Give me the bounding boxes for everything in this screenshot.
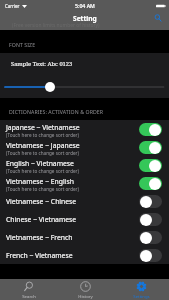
button[interactable]: French ~ Vietnamese: [0, 246, 169, 264]
staticText: Vietnamese ~ Japanese: [6, 141, 80, 150]
button[interactable]: On: [139, 123, 162, 136]
button[interactable]: On: [139, 177, 162, 190]
button[interactable]: On: [139, 159, 162, 172]
staticText: (Touch here to change sort order): [6, 132, 79, 138]
button[interactable]: Off: [139, 213, 162, 226]
button[interactable]: Vietnamese ~ Chinese: [0, 192, 169, 210]
staticText: (Touch here to change sort order): [6, 186, 79, 192]
button[interactable]: History: [57, 279, 113, 300]
button[interactable]: Search: [152, 12, 164, 24]
button[interactable]: On: [139, 141, 162, 154]
button[interactable]: [0, 81, 169, 93]
staticText: Chinese ~ Vietnamese: [6, 215, 77, 224]
staticText: French ~ Vietnamese: [6, 251, 73, 260]
button[interactable]: Search: [0, 279, 57, 300]
staticText: (Free version limits number of history): [12, 22, 100, 29]
staticText: Carrier: [5, 3, 20, 9]
staticText: Setting: [73, 14, 97, 23]
staticText: (Touch here to change sort order): [6, 168, 79, 174]
button[interactable]: Chinese ~ Vietnamese: [0, 210, 169, 228]
staticText: Vietnamese ~ Chinese: [6, 197, 77, 206]
button[interactable]: Off: [139, 195, 162, 208]
button[interactable]: Off: [139, 231, 162, 244]
staticText: English ~ Vietnamese: [6, 159, 74, 168]
button[interactable]: Japanese ~ Vietnamese: [0, 120, 169, 138]
button[interactable]: Vietnamese ~ French: [0, 228, 169, 246]
staticText: (Touch here to change sort order): [6, 150, 79, 156]
staticText: History: [78, 293, 93, 299]
staticText: Search: [22, 293, 36, 299]
staticText: Settings: [133, 293, 150, 299]
staticText: FONT SIZE: [9, 41, 36, 48]
staticText: Sample Text: Abc 0123: [11, 60, 73, 68]
button[interactable]: Vietnamese ~ English: [0, 174, 169, 192]
button[interactable]: Vietnamese ~ Japanese: [0, 138, 169, 156]
button[interactable]: English ~ Vietnamese: [0, 156, 169, 174]
staticText: 5:04 AM: [75, 2, 95, 9]
button[interactable]: Off: [139, 249, 162, 262]
staticText: Vietnamese ~ French: [6, 233, 73, 242]
button[interactable]: Settings: [113, 279, 169, 300]
staticText: Japanese ~ Vietnamese: [6, 123, 80, 132]
staticText: DICTIONARIES: ACTIVATION & ORDER: [9, 108, 104, 115]
staticText: Vietnamese ~ English: [6, 177, 74, 186]
